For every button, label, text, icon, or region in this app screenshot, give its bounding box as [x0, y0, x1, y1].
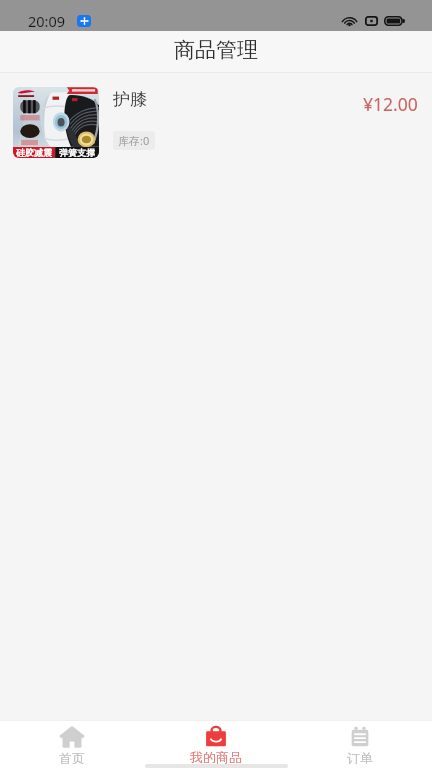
button[interactable]: 硅胶减震 — [0, 73, 432, 172]
other: 订单 — [349, 726, 371, 748]
other: 我的商品 — [205, 726, 227, 747]
staticText: 库存:0 — [118, 133, 150, 148]
staticText: 首页 — [59, 750, 85, 764]
button[interactable]: 首页 — [0, 721, 144, 764]
staticText: 商品管理 — [174, 37, 258, 63]
button[interactable]: 我的商品 — [144, 721, 288, 764]
button[interactable]: 订单 — [288, 721, 432, 764]
staticText: 我的商品 — [190, 749, 242, 764]
staticText: 硅胶减震 — [16, 147, 52, 157]
staticText: 护膝 — [113, 89, 147, 110]
other: 首页 — [59, 726, 85, 748]
staticText: 20:09 — [28, 11, 66, 31]
staticText: 弹簧支撑 — [59, 147, 95, 157]
staticText: 订单 — [347, 750, 373, 764]
staticText: ¥12.00 — [363, 92, 418, 116]
